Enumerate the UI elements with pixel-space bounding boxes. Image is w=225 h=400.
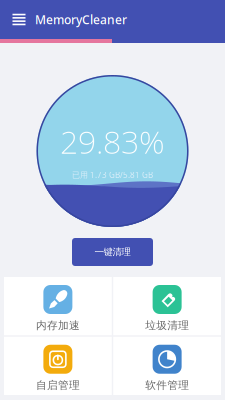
staticText: 自启管理: [36, 379, 80, 392]
staticText: 一键清理: [94, 246, 130, 258]
button[interactable]: Menu: [6, 0, 32, 39]
button[interactable]: 软件管理: [113, 337, 221, 395]
staticText: 29.83%: [60, 120, 165, 162]
staticText: 已用 1.73 GB/5.81 GB: [72, 169, 153, 180]
button[interactable]: 内存加速: [4, 277, 112, 335]
staticText: MemoryCleaner: [35, 11, 127, 27]
button[interactable]: 一键清理: [72, 238, 153, 266]
button[interactable]: 垃圾清理: [113, 277, 221, 335]
staticText: 内存加速: [36, 319, 80, 332]
button[interactable]: 自启管理: [4, 337, 112, 395]
staticText: 软件管理: [145, 379, 189, 392]
staticText: 垃圾清理: [145, 319, 189, 332]
